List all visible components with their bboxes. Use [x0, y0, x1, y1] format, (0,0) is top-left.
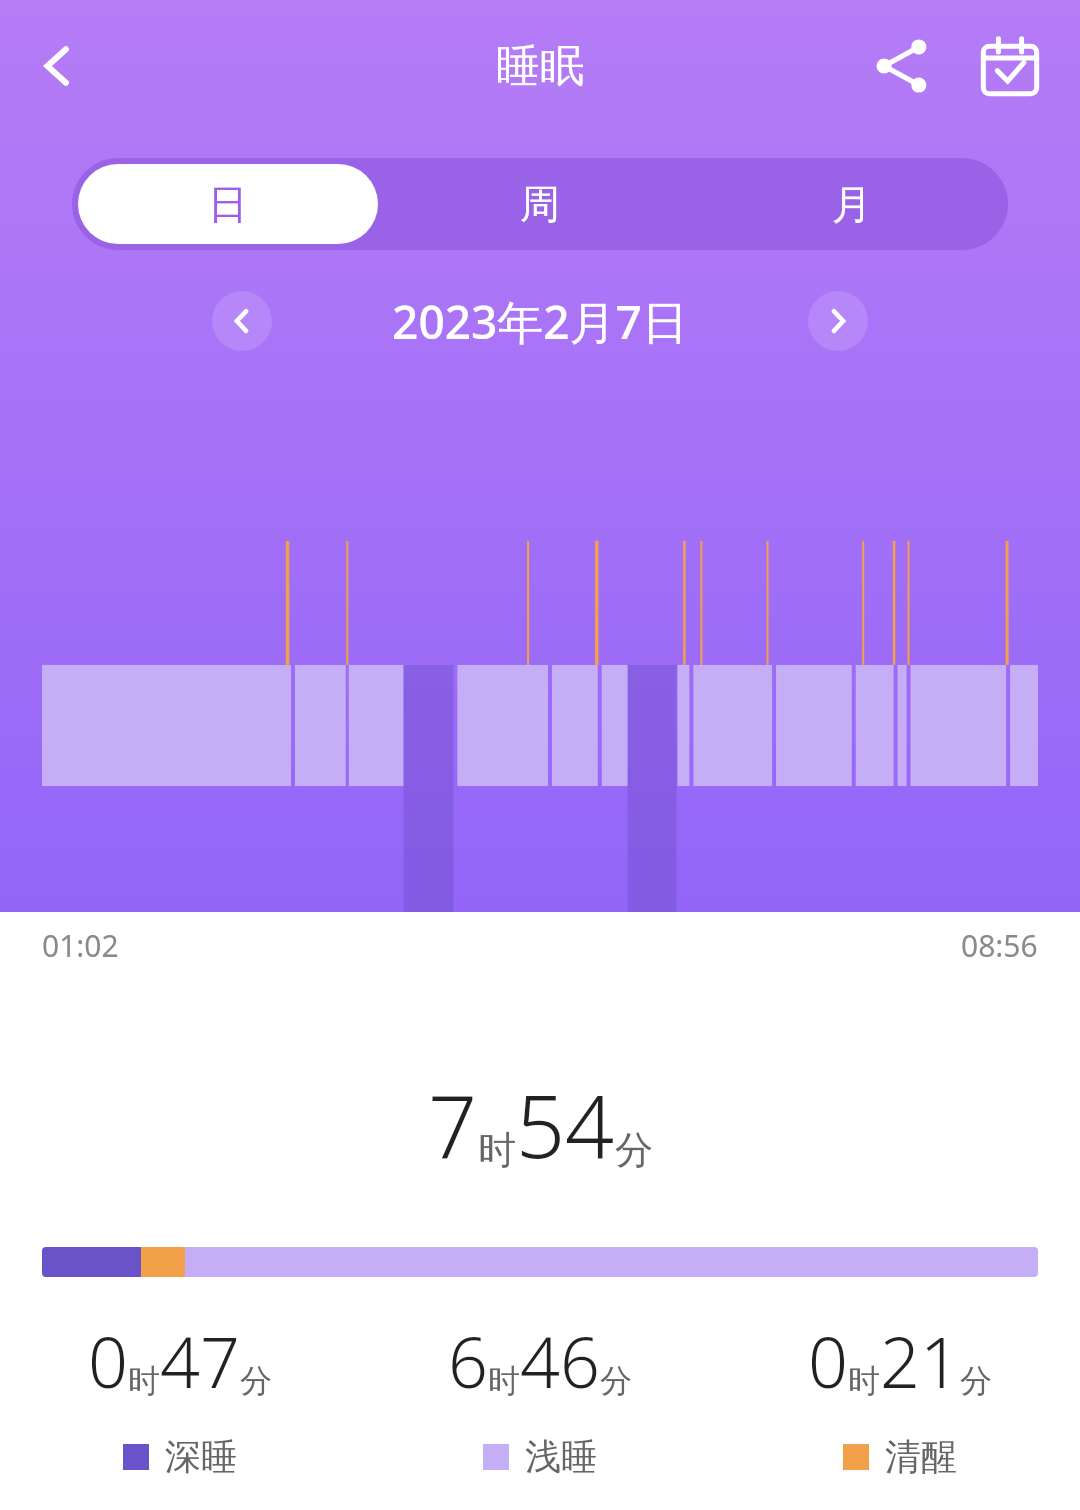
- staticText: 深睡: [165, 1434, 237, 1479]
- button[interactable]: 月: [702, 164, 1002, 244]
- staticText: 01:02: [42, 925, 119, 966]
- button[interactable]: 周: [390, 164, 690, 244]
- staticText: 2023年2月7日: [392, 290, 688, 352]
- staticText: 日: [208, 179, 248, 229]
- staticText: 47: [160, 1313, 240, 1408]
- staticText: 时: [128, 1361, 160, 1401]
- staticText: 分: [600, 1361, 632, 1401]
- staticText: 分: [960, 1361, 992, 1401]
- staticText: 46: [520, 1313, 600, 1408]
- staticText: 时: [488, 1361, 520, 1401]
- staticText: 7: [428, 1066, 478, 1183]
- button[interactable]: Calendar: [964, 20, 1056, 112]
- button[interactable]: 日: [78, 164, 378, 244]
- staticText: 6: [448, 1313, 488, 1408]
- staticText: 浅睡: [525, 1434, 597, 1479]
- staticText: 月: [832, 179, 872, 229]
- button[interactable]: Next day: [808, 291, 868, 351]
- staticText: 睡眠: [496, 39, 584, 94]
- staticText: 周: [520, 179, 560, 229]
- staticText: 21: [880, 1313, 960, 1408]
- staticText: 时: [478, 1126, 516, 1174]
- staticText: 54: [516, 1066, 615, 1183]
- staticText: 时: [848, 1361, 880, 1401]
- staticText: 0: [808, 1313, 848, 1408]
- staticText: 分: [615, 1126, 653, 1174]
- button[interactable]: Previous day: [212, 291, 272, 351]
- staticText: 分: [240, 1361, 272, 1401]
- staticText: 清醒: [885, 1434, 957, 1479]
- button[interactable]: Back: [14, 22, 102, 110]
- staticText: 08:56: [961, 925, 1038, 966]
- staticText: 0: [88, 1313, 128, 1408]
- button[interactable]: Share: [856, 20, 948, 112]
